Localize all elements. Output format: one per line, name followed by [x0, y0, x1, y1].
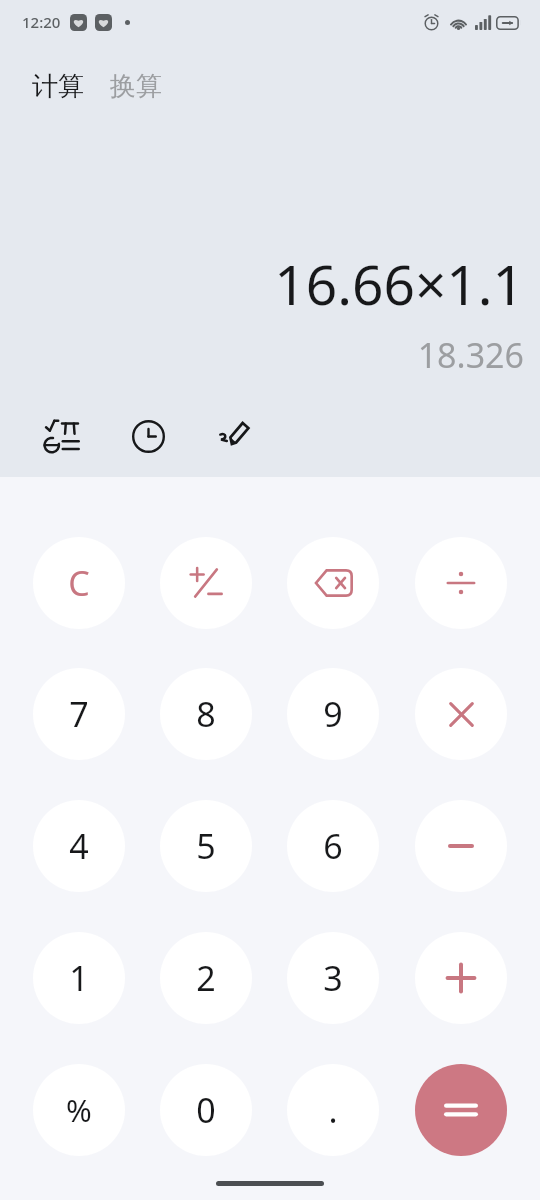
staticText: 12:20 [22, 12, 61, 32]
staticText: 1 [69, 955, 89, 1001]
button[interactable]: . [287, 1064, 379, 1156]
button[interactable]: C [33, 537, 125, 629]
button[interactable]: % [33, 1064, 125, 1156]
button[interactable]: 7 [33, 668, 125, 760]
button[interactable]: Backspace [287, 537, 379, 629]
staticText: 4 [69, 823, 89, 869]
staticText: 2 [196, 955, 216, 1001]
button[interactable]: Divide [415, 537, 507, 629]
button[interactable]: 3 [287, 932, 379, 1024]
staticText: C [68, 560, 90, 606]
button[interactable]: 计算 [30, 68, 86, 105]
button[interactable]: 9 [287, 668, 379, 760]
button[interactable]: 0 [160, 1064, 252, 1156]
staticText: 6 [323, 823, 343, 869]
staticText: 16.66×1.1 [274, 246, 524, 321]
button[interactable]: Equals [415, 1064, 507, 1156]
staticText: 5 [196, 823, 216, 869]
button[interactable]: 4 [33, 800, 125, 892]
button[interactable]: 6 [287, 800, 379, 892]
button[interactable]: Multiply [415, 668, 507, 760]
staticText: 9 [323, 691, 343, 737]
staticText: 计算 [32, 70, 84, 103]
button[interactable]: 5 [160, 800, 252, 892]
button[interactable]: 1 [33, 932, 125, 1024]
button[interactable]: History [116, 404, 180, 468]
button[interactable]: Minus [415, 800, 507, 892]
button[interactable]: 换算 [108, 68, 164, 105]
button[interactable]: 8 [160, 668, 252, 760]
button[interactable]: Scientific [30, 404, 94, 468]
button[interactable]: Handwriting [202, 404, 266, 468]
staticText: 换算 [110, 70, 162, 103]
button[interactable]: 2 [160, 932, 252, 1024]
button[interactable]: Plus [415, 932, 507, 1024]
staticText: % [66, 1089, 92, 1131]
staticText: 18.326 [417, 332, 524, 378]
staticText: 3 [323, 955, 343, 1001]
staticText: 7 [69, 691, 89, 737]
staticText: 0 [196, 1087, 216, 1133]
staticText: . [328, 1087, 338, 1133]
button[interactable]: Toggle sign [160, 537, 252, 629]
staticText: 8 [196, 691, 216, 737]
